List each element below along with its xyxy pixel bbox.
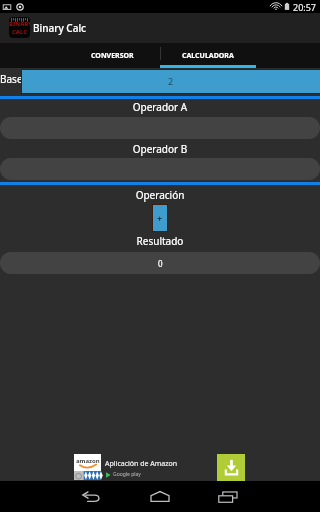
staticText: Operador B — [0, 142, 320, 156]
button[interactable]: Home — [138, 481, 182, 512]
staticText: Binary Calc — [33, 21, 87, 35]
staticText: amazon — [76, 457, 100, 465]
staticText: CONVERSOR — [91, 51, 134, 61]
staticText: CALC — [12, 28, 28, 36]
staticText: 0 — [158, 258, 163, 269]
staticText: 20:57 — [293, 1, 317, 13]
staticText: 2 — [168, 75, 174, 87]
staticText: Google play — [113, 471, 141, 478]
button[interactable]: Resultado — [0, 252, 320, 274]
button[interactable]: Recents — [206, 481, 250, 512]
staticText: CALCULADORA — [182, 51, 234, 61]
button[interactable]: CONVERSOR — [64, 43, 160, 68]
button[interactable]: Aplicación de Amazon ad — [74, 454, 245, 481]
staticText: Resultado — [0, 234, 320, 248]
button[interactable]: Install — [217, 454, 245, 481]
staticText: Operador A — [0, 100, 320, 114]
button[interactable]: CALCULADORA — [160, 43, 256, 68]
staticText: Operación — [0, 188, 320, 202]
staticText: + — [157, 212, 163, 224]
button[interactable]: Back — [70, 481, 114, 512]
button[interactable]: Operación — [153, 205, 167, 231]
staticText: Base — [0, 72, 21, 86]
staticText: BINARY — [9, 20, 30, 28]
button[interactable]: Base — [22, 70, 320, 93]
staticText: Aplicación de Amazon — [105, 459, 178, 469]
